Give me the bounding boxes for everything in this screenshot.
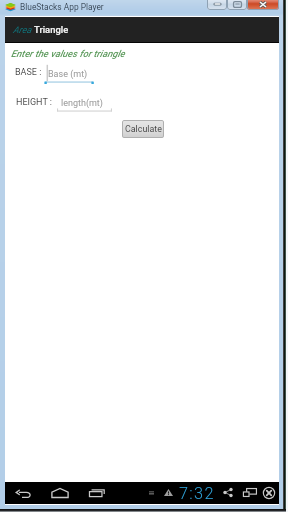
button[interactable]: Home: [51, 488, 69, 498]
staticText: Enter the values for triangle: [11, 48, 125, 59]
staticText: Calculate: [125, 124, 162, 134]
button[interactable]: Calculate: [122, 120, 164, 138]
staticText: BlueStacks App Player: [20, 2, 104, 12]
staticText: length(mt): [61, 98, 103, 109]
button[interactable]: length(mt): [57, 96, 112, 112]
staticText: BASE :: [15, 67, 42, 78]
button[interactable]: Share: [223, 488, 233, 497]
button[interactable]: Network: [149, 491, 154, 495]
button[interactable]: Screenshot: [243, 488, 257, 497]
button[interactable]: Warning: [164, 489, 173, 496]
button[interactable]: Close: [247, 0, 279, 10]
button[interactable]: Close: [263, 487, 275, 499]
staticText: 7:32: [179, 484, 215, 503]
button[interactable]: Back: [16, 490, 31, 498]
button[interactable]: Maximize: [227, 0, 247, 10]
button[interactable]: Base (mt): [45, 67, 93, 83]
button[interactable]: Recents: [89, 489, 105, 497]
staticText: Area: [13, 24, 32, 35]
button[interactable]: Minimize: [207, 0, 227, 10]
staticText: Base (mt): [48, 69, 88, 80]
staticText: HEIGHT :: [16, 97, 53, 108]
staticText: Triangle: [34, 24, 69, 35]
